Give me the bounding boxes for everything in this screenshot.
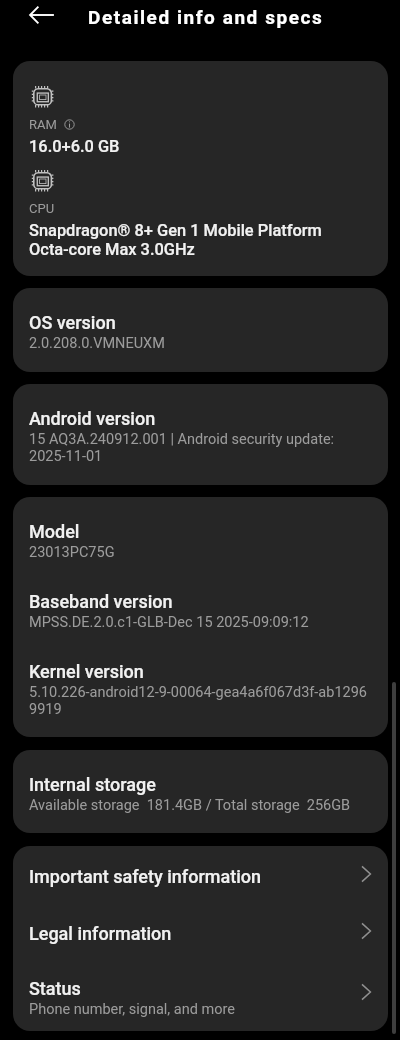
staticText: Snapdragon® 8+ Gen 1 Mobile Platform Oct…	[29, 221, 322, 259]
staticText: Model	[29, 521, 80, 542]
staticText: Phone number, signal, and more	[29, 1001, 235, 1018]
staticText: 15 AQ3A.240912.001 | Android security up…	[29, 431, 335, 464]
staticText: 16.0+6.0 GB	[29, 137, 120, 156]
staticText: RAM	[29, 117, 57, 132]
button[interactable]: Back	[18, 0, 65, 34]
staticText: Legal information	[29, 923, 172, 944]
button[interactable]: Important safety information	[13, 846, 388, 902]
staticText: Android version	[29, 408, 156, 429]
staticText: Available storage 181.4GB / Total storag…	[29, 797, 351, 814]
staticText: 23013PC75G	[29, 544, 115, 561]
staticText: Status	[29, 978, 81, 999]
staticText: Important safety information	[29, 866, 262, 887]
staticText: Kernel version	[29, 661, 144, 682]
staticText: OS version	[29, 312, 116, 333]
staticText: 2.0.208.0.VMNEUXM	[29, 335, 165, 352]
staticText: CPU	[29, 201, 55, 216]
staticText: MPSS.DE.2.0.c1-GLB-Dec 15 2025-09:09:12	[29, 614, 309, 631]
button[interactable]: Legal information	[13, 902, 388, 959]
staticText: 5.10.226-android12-9-00064-gea4a6f067d3f…	[29, 684, 367, 717]
staticText: Detailed info and specs	[88, 6, 324, 28]
button[interactable]: Status	[13, 959, 388, 1031]
staticText: Internal storage	[29, 774, 156, 795]
staticText: Baseband version	[29, 591, 173, 612]
